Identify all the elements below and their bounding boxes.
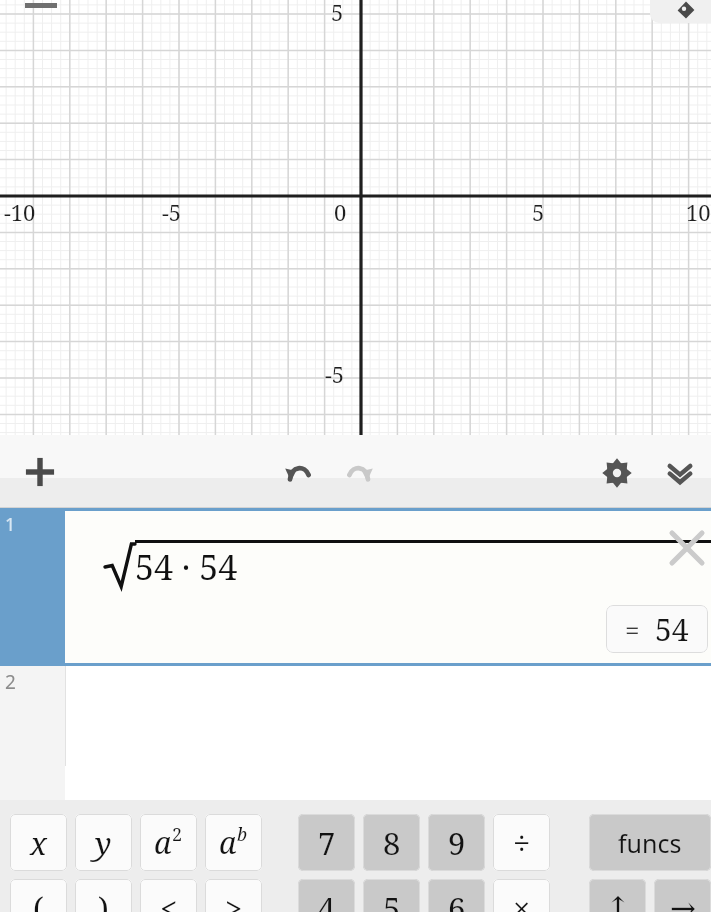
button[interactable]: =	[606, 605, 708, 653]
staticText: -10	[4, 197, 36, 227]
button[interactable]: Redo	[336, 449, 384, 497]
staticText: ↑	[605, 890, 631, 912]
button[interactable]: →	[654, 879, 711, 912]
staticText: 4	[318, 887, 336, 912]
button[interactable]: 7	[298, 814, 355, 871]
staticText: a	[219, 822, 237, 863]
button[interactable]: Collapse keypad	[656, 449, 704, 497]
button[interactable]: a	[140, 814, 197, 871]
button[interactable]: Edit label	[650, 0, 711, 23]
button[interactable]: ×	[493, 879, 550, 912]
staticText: 54 · 54	[135, 544, 238, 590]
staticText: -5	[325, 359, 345, 389]
staticText: x	[30, 822, 47, 864]
button[interactable]: 2	[0, 666, 65, 800]
staticText: y	[95, 822, 112, 864]
button[interactable]: Undo	[274, 449, 322, 497]
staticText: 5	[532, 197, 545, 227]
staticText: 2	[5, 669, 16, 695]
staticText: -5	[162, 197, 182, 227]
button[interactable]: 5	[363, 879, 420, 912]
staticText: 10	[686, 197, 711, 227]
staticText: 54	[655, 609, 689, 650]
staticText: 8	[383, 822, 401, 864]
staticText: b	[237, 822, 248, 847]
staticText: <	[160, 887, 178, 912]
button[interactable]: x	[10, 814, 67, 871]
staticText: =	[625, 612, 640, 647]
staticText: 9	[448, 822, 466, 864]
button[interactable]: <	[140, 879, 197, 912]
staticText: 6	[448, 887, 466, 912]
button[interactable]: a	[205, 814, 262, 871]
button[interactable]: 6	[428, 879, 485, 912]
button[interactable]: ↑	[589, 879, 646, 912]
button[interactable]: )	[75, 879, 132, 912]
staticText: (	[33, 887, 44, 912]
button[interactable]: Delete expression	[666, 527, 708, 569]
button[interactable]: funcs	[589, 814, 711, 871]
staticText: 2	[172, 822, 183, 847]
staticText: >	[225, 887, 243, 912]
staticText: →	[670, 890, 696, 912]
button[interactable]: 54 · 54	[65, 511, 711, 666]
button[interactable]: >	[205, 879, 262, 912]
staticText: ×	[513, 887, 531, 912]
staticText: funcs	[618, 826, 682, 860]
button[interactable]: Settings	[593, 449, 641, 497]
button[interactable]: y	[75, 814, 132, 871]
staticText: 7	[318, 822, 336, 864]
button[interactable]: 4	[298, 879, 355, 912]
button[interactable]: 9	[428, 814, 485, 871]
button[interactable]: Add expression	[16, 448, 64, 496]
staticText: ÷	[513, 822, 531, 864]
staticText: 0	[334, 197, 347, 227]
button[interactable]: (	[10, 879, 67, 912]
staticText: 1	[5, 512, 16, 537]
staticText: a	[154, 822, 172, 863]
button[interactable]: ÷	[493, 814, 550, 871]
staticText: 5	[383, 887, 401, 912]
button[interactable]: 1	[0, 511, 65, 666]
button[interactable]: 8	[363, 814, 420, 871]
staticText: )	[98, 887, 109, 912]
staticText: 5	[331, 0, 344, 27]
